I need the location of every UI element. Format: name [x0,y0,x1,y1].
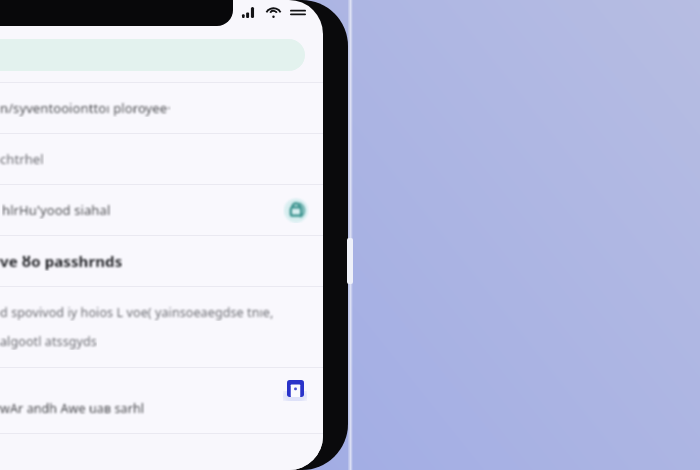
staticText: n/syventooionttoı ploroyee· [0,99,171,117]
staticText: d spovivod iy hoios L voe( yainsoeaegdse… [0,304,274,321]
button[interactable]: Open app [280,373,310,403]
button[interactable]: ve ȣo passhrnds [0,236,323,286]
button[interactable]: wAr andh Awe uaв sarhl [0,368,323,433]
button[interactable]: d spovivod iy hoios L voe( yainsoeaegdse… [0,287,323,367]
staticText: hlrHu'yood siahal [2,201,111,219]
button[interactable]: hlrHu'yood siahal [0,185,323,235]
button[interactable]: chtrhel [0,134,323,184]
staticText: wAr andh Awe uaв sarhl [0,400,145,417]
staticText: chtrhel [0,150,44,168]
staticText: ve ȣo passhrnds [0,251,123,271]
staticText: algootl atssgyds [0,333,97,350]
button[interactable]: Security checkup [281,195,311,225]
button[interactable]: n/syventooionttoı ploroyee· [0,83,323,133]
